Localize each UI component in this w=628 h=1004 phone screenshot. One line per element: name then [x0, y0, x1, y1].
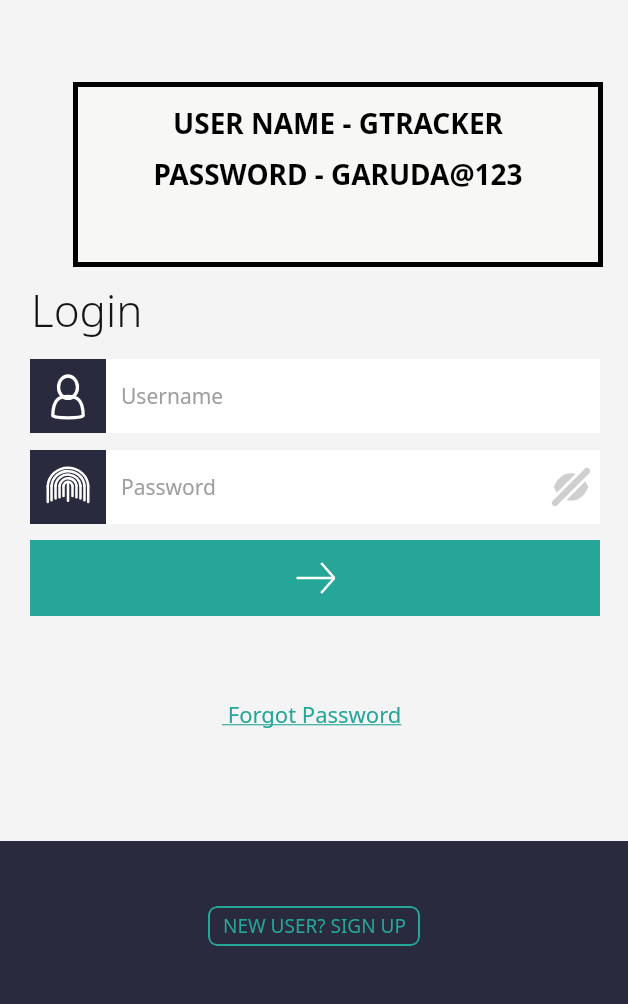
button[interactable]: Show password — [542, 450, 600, 524]
button[interactable]: Username — [30, 359, 600, 433]
button[interactable]: Password — [30, 450, 600, 524]
button[interactable]: Forgot Password — [218, 697, 412, 731]
staticText: Forgot Password — [222, 699, 408, 729]
button[interactable]: Sign in — [30, 540, 600, 616]
button[interactable]: NEW USER? SIGN UP — [208, 906, 420, 946]
staticText: NEW USER? SIGN UP — [223, 913, 406, 939]
staticText: USER NAME - GTRACKER — [173, 104, 503, 142]
staticText: Password — [121, 473, 542, 502]
staticText: PASSWORD - GARUDA@123 — [153, 155, 523, 193]
staticText: Login — [31, 280, 143, 340]
staticText: Username — [121, 382, 224, 411]
